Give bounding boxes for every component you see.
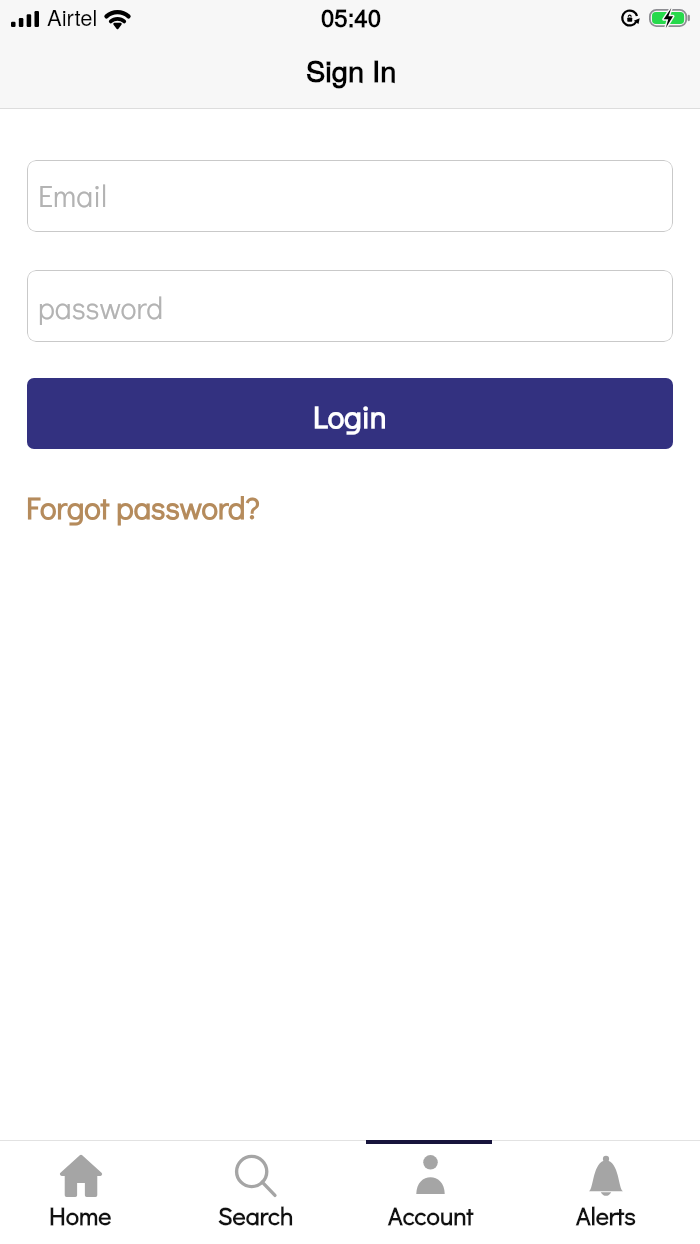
staticText: Search: [218, 1199, 294, 1232]
button[interactable]: Search: [168, 1140, 343, 1244]
staticText: 05:40: [321, 0, 382, 33]
staticText: password: [38, 288, 164, 327]
button[interactable]: Alerts: [518, 1140, 693, 1244]
button[interactable]: password: [27, 270, 673, 342]
button[interactable]: Account: [343, 1140, 518, 1244]
staticText: Sign In: [306, 49, 397, 91]
staticText: Alerts: [576, 1199, 636, 1232]
staticText: Home: [49, 1199, 112, 1232]
button[interactable]: Forgot password?: [23, 483, 263, 532]
staticText: Airtel: [47, 1, 98, 33]
staticText: Email: [38, 176, 108, 215]
staticText: Login: [313, 396, 387, 437]
staticText: Forgot password?: [26, 487, 260, 528]
staticText: Account: [388, 1199, 474, 1232]
button[interactable]: Email: [27, 160, 673, 232]
button[interactable]: Login: [27, 378, 673, 449]
button[interactable]: Home: [0, 1140, 168, 1244]
